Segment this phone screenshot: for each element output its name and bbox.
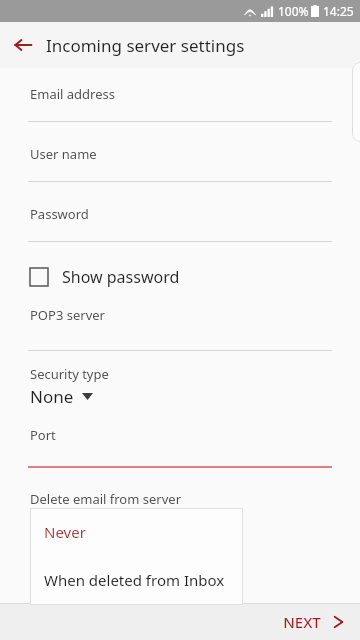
staticText: Never [44, 522, 86, 542]
button[interactable]: NEXT [267, 604, 360, 640]
staticText: Show password [62, 266, 180, 288]
staticText: None [30, 385, 74, 408]
staticText: Security type [30, 365, 109, 383]
button[interactable]: Show password [0, 258, 360, 296]
staticText: 100% [278, 3, 309, 19]
staticText: User name [30, 145, 97, 163]
staticText: 14:25 [323, 3, 354, 19]
staticText: Port [30, 426, 56, 444]
button[interactable]: Back [0, 22, 46, 68]
button[interactable]: When deleted from Inbox [30, 556, 243, 604]
button[interactable]: Never [30, 508, 243, 556]
staticText: Delete email from server [30, 490, 181, 508]
staticText: Email address [30, 85, 115, 103]
staticText: When deleted from Inbox [44, 570, 225, 590]
staticText: NEXT [283, 612, 321, 632]
staticText: Incoming server settings [46, 34, 245, 57]
button[interactable]: None [30, 385, 93, 408]
staticText: Password [30, 205, 89, 223]
staticText: POP3 server [30, 306, 105, 324]
